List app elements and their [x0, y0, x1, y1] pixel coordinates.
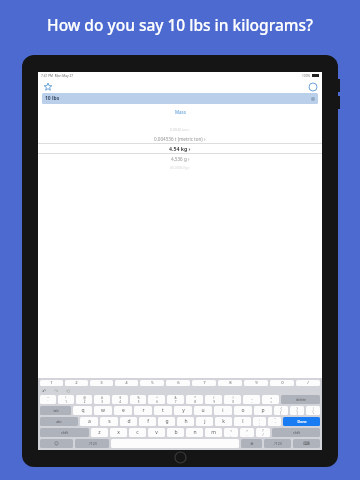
button[interactable]: o [234, 406, 252, 415]
button[interactable]: ? / [256, 428, 270, 437]
button[interactable]: i [214, 406, 232, 415]
staticText: } ] [296, 407, 298, 415]
button[interactable]: Favorite [42, 81, 53, 92]
button[interactable]: 4,536 g › [38, 154, 322, 163]
button[interactable]: > . [240, 428, 254, 437]
button[interactable]: f [139, 417, 156, 426]
button[interactable]: z [91, 428, 108, 437]
button[interactable]: p [254, 406, 272, 415]
button[interactable]: y [174, 406, 192, 415]
button[interactable]: ~ ` [40, 395, 56, 404]
button[interactable]: abc [40, 417, 78, 426]
button[interactable]: m [205, 428, 222, 437]
button[interactable]: Info [307, 81, 318, 92]
button[interactable]: shift [272, 428, 320, 437]
button[interactable]: r [134, 406, 152, 415]
button[interactable]: " ' [268, 417, 281, 426]
button[interactable]: / [296, 380, 320, 386]
staticText: h [184, 418, 188, 425]
staticText: 0 [281, 380, 284, 386]
button[interactable]: * 8 [186, 395, 203, 404]
button[interactable]: Undo 1 [52, 387, 61, 394]
staticText: o [241, 407, 245, 414]
button[interactable]: 8 [218, 380, 242, 386]
button[interactable]: 0.004536 t (metric ton) › [38, 134, 322, 143]
button[interactable]: ) 0 [224, 395, 241, 404]
button[interactable]: ⌨ [293, 439, 320, 448]
staticText: 45.3592 hg › [170, 165, 190, 170]
button[interactable]: n [186, 428, 203, 437]
button[interactable]: 3 [90, 380, 113, 386]
button[interactable]: # 3 [94, 395, 110, 404]
button[interactable]: < , [224, 428, 238, 437]
button[interactable]: { [ [274, 406, 288, 415]
button[interactable]: } ] [290, 406, 304, 415]
button[interactable]: 4 [115, 380, 138, 386]
button[interactable]: 10 lbs [42, 93, 318, 104]
button[interactable]: Undo 2 [64, 387, 73, 394]
staticText: c [136, 429, 139, 436]
button[interactable]: t [154, 406, 172, 415]
button[interactable]: : ; [253, 417, 266, 426]
button[interactable]: 1 [40, 380, 63, 386]
button[interactable]: j [196, 417, 213, 426]
button[interactable]: 9 [244, 380, 268, 386]
button[interactable]: 7 [192, 380, 216, 386]
button[interactable]: delete [281, 395, 320, 404]
button[interactable]: & 7 [167, 395, 184, 404]
button[interactable]: $ 4 [112, 395, 128, 404]
button[interactable]: ^ 6 [148, 395, 165, 404]
button[interactable]: x [110, 428, 127, 437]
button[interactable]: @ 2 [76, 395, 92, 404]
button[interactable]: 5 [140, 380, 164, 386]
button[interactable]: w [94, 406, 112, 415]
button[interactable]: l [234, 417, 251, 426]
button[interactable]: e [114, 406, 132, 415]
staticText: shift [61, 430, 68, 435]
button[interactable]: h [177, 417, 194, 426]
button[interactable]: g [158, 417, 175, 426]
button[interactable]: tab [40, 406, 71, 415]
button[interactable]: a [80, 417, 98, 426]
button[interactable]: ( 9 [205, 395, 222, 404]
button[interactable]: 2 [65, 380, 88, 386]
button[interactable]: b [167, 428, 184, 437]
staticText: 2 [75, 380, 78, 386]
button[interactable]: Done [283, 417, 320, 426]
button[interactable]: ⊕ [241, 439, 262, 448]
button[interactable]: c [129, 428, 146, 437]
staticText: 4 [125, 380, 128, 386]
staticText: 6 [177, 380, 180, 386]
button[interactable]: d [120, 417, 137, 426]
button[interactable]: Undo 0 [40, 387, 49, 394]
staticText: w [101, 407, 105, 414]
staticText: x [117, 429, 120, 436]
button[interactable]: u [194, 406, 212, 415]
button[interactable]: shift [40, 428, 89, 437]
button[interactable]: | \ [306, 406, 320, 415]
button[interactable]: _ - [243, 395, 260, 404]
button[interactable]: v [148, 428, 165, 437]
button[interactable]: 0 [270, 380, 294, 386]
staticText: 0.004536 t (metric ton) › [154, 136, 206, 142]
button[interactable]: s [100, 417, 118, 426]
staticText: q [81, 407, 85, 414]
button[interactable]: k [215, 417, 232, 426]
button[interactable]: ☺ [40, 439, 73, 448]
button[interactable]: .?123 [264, 439, 291, 448]
button[interactable]: ! 1 [58, 395, 74, 404]
button[interactable]: 6 [166, 380, 190, 386]
button[interactable]: Mass [175, 109, 186, 115]
button[interactable]: % 5 [130, 395, 146, 404]
button[interactable]: + = [262, 395, 279, 404]
button[interactable]: .?123 [75, 439, 109, 448]
staticText: ☺ [54, 441, 59, 446]
staticText: .?123 [273, 441, 282, 446]
staticText: ) 0 [232, 396, 234, 404]
button[interactable]: 4.54 kg › [38, 144, 322, 153]
button[interactable]: q [73, 406, 92, 415]
staticText: 9 [255, 380, 258, 386]
